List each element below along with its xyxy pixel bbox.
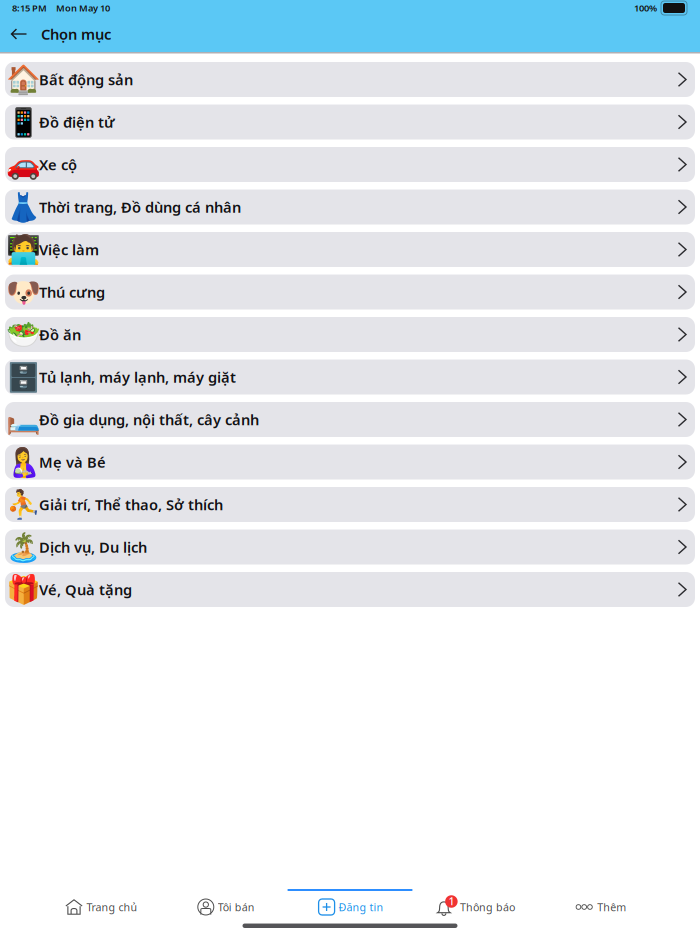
staticText: 🏠 xyxy=(5,63,40,95)
button[interactable]: 🥗 xyxy=(5,317,695,352)
staticText: 🧑‍💻 xyxy=(5,233,40,265)
staticText: 🛏️ xyxy=(5,403,40,435)
staticText: 100% xyxy=(634,2,657,14)
staticText: 🐶 xyxy=(5,276,40,308)
staticText: 🚗 xyxy=(5,148,40,180)
button[interactable]: 🏠 xyxy=(5,62,695,97)
staticText: Giải trí, Thể thao, Sở thích xyxy=(39,495,223,514)
button[interactable]: Back xyxy=(2,19,36,49)
button[interactable]: 🗄️ xyxy=(5,359,695,394)
staticText: Mẹ và Bé xyxy=(39,452,106,472)
staticText: Vé, Quà tặng xyxy=(39,580,132,599)
staticText: Đồ ăn xyxy=(39,325,81,344)
staticText: 1 xyxy=(448,894,454,908)
staticText: 🎁 xyxy=(5,573,40,605)
staticText: 🥗 xyxy=(5,318,40,350)
staticText: 8:15 PM xyxy=(12,2,47,14)
staticText: Đồ gia dụng, nội thất, cây cảnh xyxy=(39,410,259,429)
button[interactable]: 1 xyxy=(412,880,537,929)
button[interactable]: Thêm xyxy=(537,880,662,929)
staticText: Chọn mục xyxy=(41,24,111,44)
staticText: Thông báo xyxy=(460,900,515,914)
staticText: Mon May 10 xyxy=(56,2,110,14)
button[interactable]: 🐶 xyxy=(5,274,695,309)
staticText: Dịch vụ, Du lịch xyxy=(39,537,147,557)
button[interactable]: 👗 xyxy=(5,189,695,224)
staticText: Bất động sản xyxy=(39,70,133,89)
button[interactable]: 🤱 xyxy=(5,444,695,479)
staticText: Thời trang, Đồ dùng cá nhân xyxy=(39,197,241,217)
staticText: 🏝️ xyxy=(5,531,40,563)
button[interactable]: 🛏️ xyxy=(5,402,695,437)
staticText: ⛹️ xyxy=(5,488,40,520)
button[interactable]: ⛹️ xyxy=(5,487,695,522)
button[interactable]: 📱 xyxy=(5,104,695,139)
button[interactable]: 🏝️ xyxy=(5,529,695,564)
button[interactable]: Trang chủ xyxy=(38,880,163,929)
staticText: Trang chủ xyxy=(86,900,137,914)
staticText: 🗄️ xyxy=(5,361,40,393)
staticText: 🤱 xyxy=(5,446,40,478)
button[interactable]: 🚗 xyxy=(5,147,695,182)
button[interactable]: Đăng tin xyxy=(288,880,412,929)
staticText: Việc làm xyxy=(39,240,99,259)
staticText: Xe cộ xyxy=(39,155,77,174)
staticText: Tôi bán xyxy=(218,900,255,914)
button[interactable]: Tôi bán xyxy=(163,880,288,929)
staticText: 📱 xyxy=(5,106,40,138)
staticText: 👗 xyxy=(5,191,40,223)
staticText: Tủ lạnh, máy lạnh, máy giặt xyxy=(39,367,236,387)
button[interactable]: 🎁 xyxy=(5,572,695,607)
button[interactable]: 🧑‍💻 xyxy=(5,232,695,267)
staticText: Đồ điện tử xyxy=(39,112,115,132)
staticText: Thêm xyxy=(597,900,626,914)
staticText: Đăng tin xyxy=(339,900,384,914)
staticText: Thú cưng xyxy=(39,282,105,302)
